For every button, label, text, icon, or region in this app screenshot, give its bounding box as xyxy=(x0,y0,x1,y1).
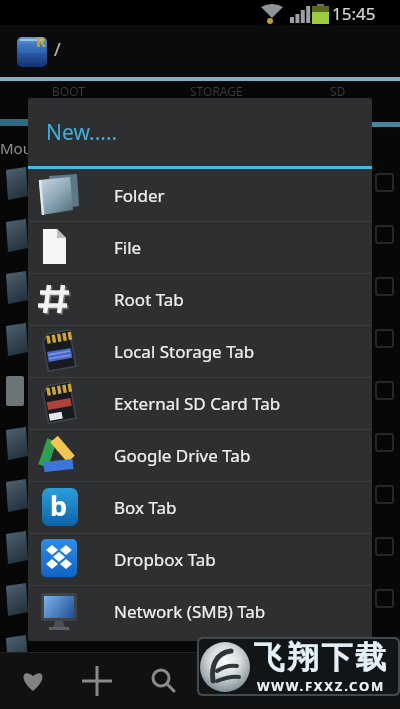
staticText: b xyxy=(50,488,68,524)
button[interactable]: Local Storage Tab xyxy=(28,325,372,377)
staticText: Root Tab xyxy=(114,288,184,311)
staticText: Mou xyxy=(0,138,32,158)
staticText: / xyxy=(54,37,61,62)
button[interactable]: Folder xyxy=(28,169,372,221)
button[interactable]: External SD Card Tab xyxy=(28,377,372,429)
staticText: New..... xyxy=(46,118,118,147)
button[interactable]: File xyxy=(28,221,372,273)
staticText: BOOT xyxy=(52,83,85,99)
button[interactable]: Network (SMB) Tab xyxy=(28,585,372,637)
staticText: Folder xyxy=(114,184,165,207)
staticText: WWW.FXXZ.COM xyxy=(257,677,386,695)
staticText: Box Tab xyxy=(114,496,177,519)
staticText: File xyxy=(114,236,142,259)
staticText: External SD Card Tab xyxy=(114,392,281,415)
button[interactable]: Root Tab xyxy=(28,273,372,325)
staticText: Dropbox Tab xyxy=(114,548,216,571)
button[interactable]: b xyxy=(28,481,372,533)
staticText: Google Drive Tab xyxy=(114,444,251,467)
staticText: STORAGE xyxy=(190,83,243,99)
button[interactable]: Google Drive Tab xyxy=(28,429,372,481)
staticText: Network (SMB) Tab xyxy=(114,600,266,623)
staticText: 飞翔下载 xyxy=(252,638,388,677)
staticText: R xyxy=(36,31,46,51)
staticText: 15:45 xyxy=(332,2,376,25)
staticText: SD xyxy=(330,83,346,99)
staticText: Local Storage Tab xyxy=(114,340,255,363)
button[interactable]: Dropbox Tab xyxy=(28,533,372,585)
